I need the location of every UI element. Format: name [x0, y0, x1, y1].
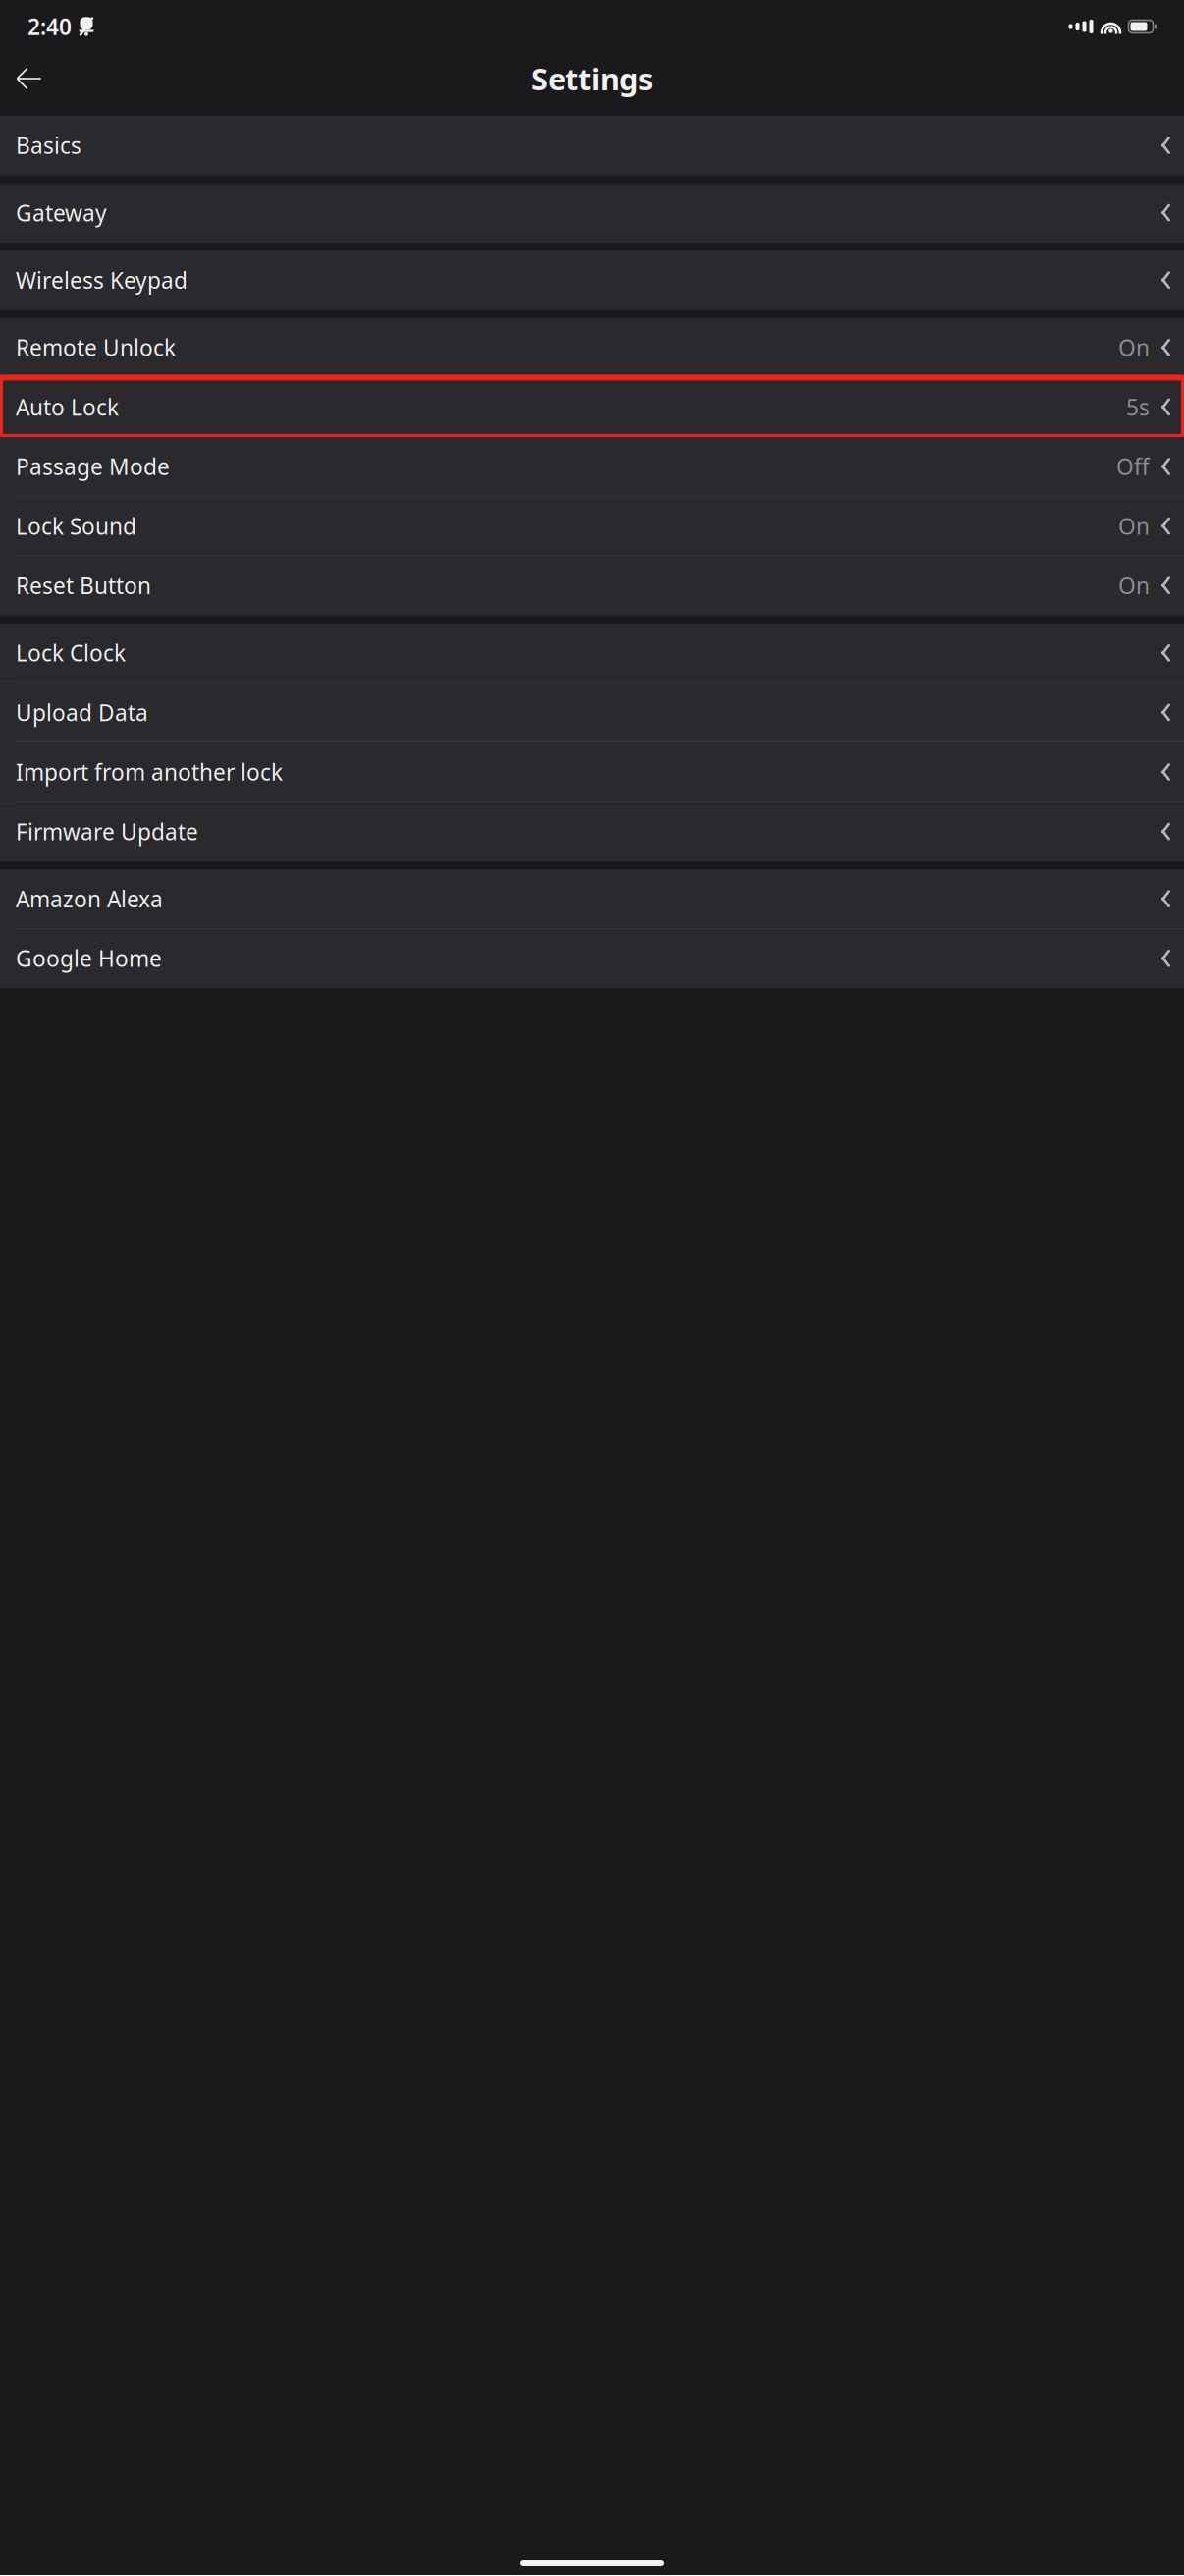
staticText: Basics [16, 131, 81, 160]
button[interactable]: Remote Unlock [0, 318, 1184, 378]
staticText: Firmware Update [16, 817, 198, 846]
button[interactable]: Wireless Keypad [0, 251, 1184, 310]
button[interactable]: Back [2, 55, 57, 102]
staticText: Auto Lock [16, 392, 119, 422]
button[interactable]: Basics [0, 116, 1184, 175]
staticText: 2:40 [27, 12, 72, 41]
staticText: Settings [531, 59, 653, 99]
staticText: Google Home [16, 943, 162, 973]
staticText: Passage Mode [16, 452, 170, 481]
button[interactable]: Import from another lock [0, 742, 1184, 802]
button[interactable]: Firmware Update [0, 802, 1184, 861]
staticText: Wireless Keypad [16, 265, 188, 295]
staticText: 5s [1126, 392, 1150, 422]
button[interactable]: Gateway [0, 183, 1184, 243]
staticText: Lock Clock [16, 638, 126, 668]
button[interactable]: Reset Button [0, 556, 1184, 616]
staticText: On [1118, 511, 1150, 541]
staticText: Off [1116, 452, 1150, 481]
staticText: On [1118, 571, 1150, 600]
button[interactable]: Auto Lock [0, 378, 1184, 437]
staticText: Upload Data [16, 698, 148, 727]
button[interactable]: Lock Sound [0, 497, 1184, 556]
button[interactable]: Amazon Alexa [0, 869, 1184, 929]
button[interactable]: Passage Mode [0, 437, 1184, 497]
staticText: Gateway [16, 198, 107, 227]
staticText: Remote Unlock [16, 333, 176, 362]
button[interactable]: Upload Data [0, 683, 1184, 742]
staticText: On [1118, 333, 1150, 362]
staticText: Lock Sound [16, 511, 136, 541]
button[interactable]: Lock Clock [0, 623, 1184, 683]
staticText: Reset Button [16, 571, 151, 600]
staticText: Amazon Alexa [16, 884, 163, 914]
staticText: Import from another lock [16, 757, 283, 787]
button[interactable]: Google Home [0, 929, 1184, 988]
